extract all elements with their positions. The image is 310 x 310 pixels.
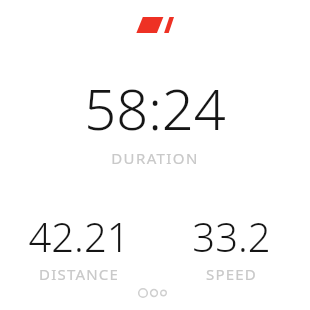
staticText: 42.21 (28, 209, 130, 263)
button[interactable]: App logo (136, 15, 174, 34)
staticText: DISTANCE (39, 264, 119, 284)
staticText: DURATION (111, 148, 199, 168)
button[interactable]: 58:24 (0, 70, 310, 168)
staticText: SPEED (206, 264, 257, 284)
staticText: 33.2 (192, 209, 271, 263)
button[interactable]: 33.2 (157, 209, 305, 284)
button[interactable]: Page indicator (138, 287, 172, 299)
button[interactable]: 42.21 (5, 209, 153, 284)
staticText: 58:24 (84, 70, 226, 146)
